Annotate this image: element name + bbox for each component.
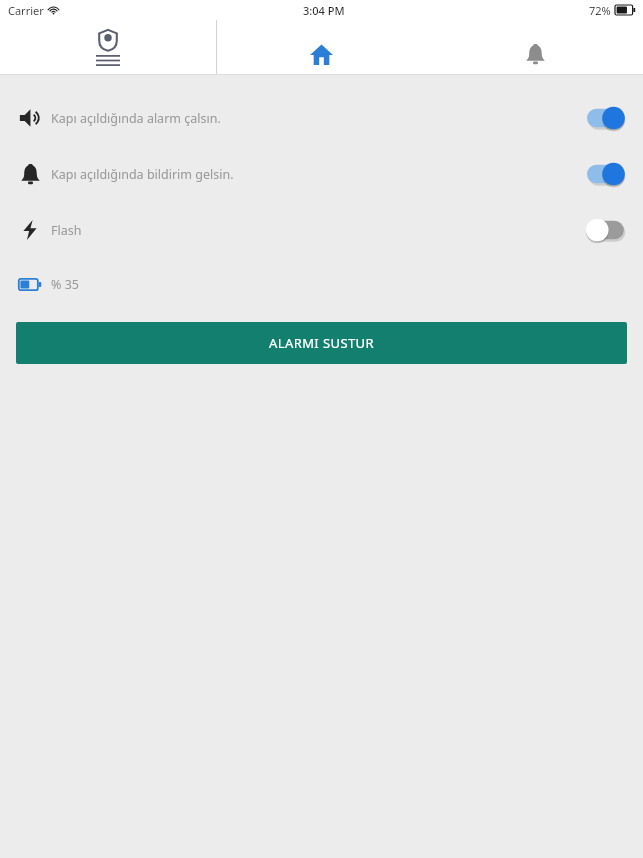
staticText: Carrier bbox=[8, 3, 44, 18]
button[interactable]: Home bbox=[217, 20, 425, 75]
staticText: Kapı açıldığında alarm çalsın. bbox=[51, 110, 221, 127]
staticText: Flash bbox=[51, 222, 82, 239]
button[interactable]: ALARMI SUSTUR bbox=[16, 322, 627, 364]
staticText: % 35 bbox=[51, 276, 79, 293]
button[interactable]: Kapı açıldığında bildirim gelsin. bbox=[0, 157, 643, 191]
staticText: ALARMI SUSTUR bbox=[269, 334, 374, 352]
button[interactable]: On bbox=[587, 162, 627, 186]
button[interactable]: On bbox=[587, 106, 627, 130]
button[interactable]: Flash bbox=[0, 213, 643, 247]
button[interactable]: Menu bbox=[0, 20, 216, 75]
button[interactable]: Off bbox=[587, 218, 627, 242]
button[interactable]: Notifications bbox=[427, 20, 643, 75]
staticText: 72% bbox=[589, 3, 611, 18]
staticText: 3:04 PM bbox=[303, 3, 345, 18]
staticText: Kapı açıldığında bildirim gelsin. bbox=[51, 166, 234, 183]
button[interactable]: Kapı açıldığında alarm çalsın. bbox=[0, 101, 643, 135]
